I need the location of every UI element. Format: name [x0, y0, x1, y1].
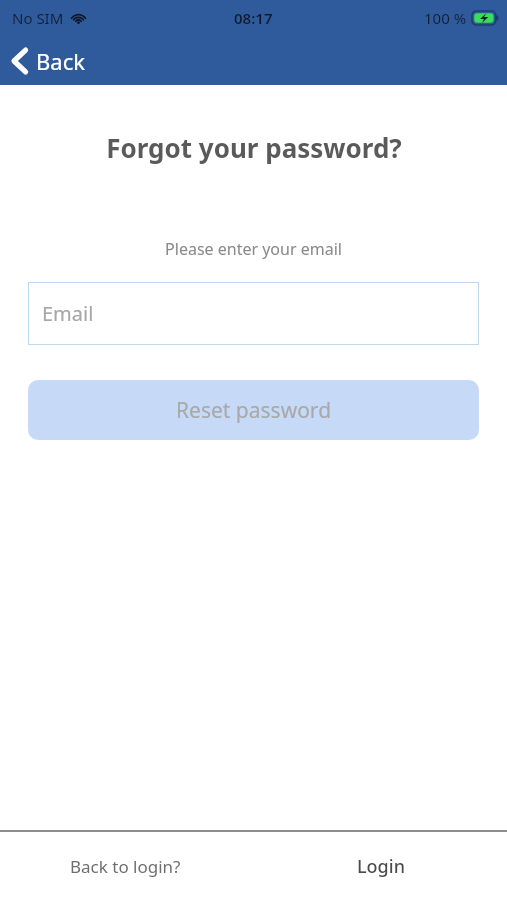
button[interactable]: Back: [10, 36, 85, 85]
button[interactable]: Email: [28, 282, 479, 345]
staticText: Forgot your password?: [106, 130, 402, 165]
staticText: Email: [42, 300, 94, 327]
staticText: 08:17: [234, 8, 273, 28]
staticText: No SIM: [12, 8, 64, 28]
staticText: Reset password: [176, 396, 332, 425]
staticText: Login: [357, 854, 405, 879]
button[interactable]: Back to login?: [44, 840, 206, 892]
staticText: Back: [36, 46, 85, 76]
staticText: Please enter your email: [165, 238, 342, 260]
button[interactable]: Login: [321, 840, 441, 892]
staticText: Back to login?: [70, 855, 181, 878]
staticText: 100 %: [424, 8, 467, 28]
button[interactable]: Reset password: [28, 380, 479, 440]
